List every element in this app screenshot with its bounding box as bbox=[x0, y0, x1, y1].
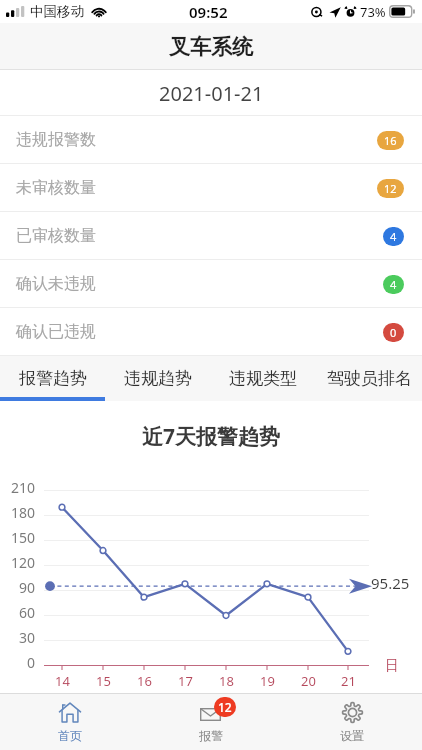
staticText: 19 bbox=[260, 672, 275, 690]
staticText: 150 bbox=[11, 528, 36, 547]
staticText: 16 bbox=[384, 133, 397, 148]
staticText: 设置 bbox=[340, 728, 364, 743]
staticText: 16 bbox=[137, 672, 152, 690]
staticText: 中国移动 bbox=[30, 3, 84, 20]
staticText: 180 bbox=[11, 503, 36, 522]
staticText: 0 bbox=[27, 653, 36, 672]
button[interactable]: 确认已违规 bbox=[0, 308, 422, 356]
staticText: 0 bbox=[390, 325, 397, 340]
staticText: 报警趋势 bbox=[19, 368, 87, 389]
staticText: 17 bbox=[178, 672, 193, 690]
staticText: 12 bbox=[218, 699, 232, 715]
staticText: 20 bbox=[301, 672, 316, 690]
button[interactable]: 违规类型 bbox=[210, 356, 316, 401]
staticText: 报警 bbox=[199, 728, 223, 743]
button[interactable]: 违规报警数 bbox=[0, 116, 422, 164]
staticText: 2021-01-21 bbox=[159, 80, 264, 107]
staticText: 09:52 bbox=[189, 2, 228, 22]
staticText: 违规报警数 bbox=[16, 130, 96, 150]
staticText: 驾驶员排名 bbox=[327, 368, 412, 389]
staticText: 14 bbox=[55, 672, 70, 690]
staticText: 叉车系统 bbox=[169, 34, 253, 60]
staticText: 60 bbox=[19, 603, 36, 622]
staticText: 18 bbox=[219, 672, 234, 690]
staticText: 30 bbox=[19, 628, 36, 647]
button[interactable]: 设置 bbox=[281, 693, 422, 750]
staticText: 90 bbox=[19, 578, 36, 597]
staticText: 95.25 bbox=[371, 573, 410, 593]
staticText: 首页 bbox=[58, 728, 82, 743]
staticText: 确认未违规 bbox=[16, 274, 96, 294]
staticText: 违规类型 bbox=[229, 368, 297, 389]
staticText: 已审核数量 bbox=[16, 226, 96, 246]
button[interactable]: 首页 bbox=[0, 693, 140, 750]
staticText: 近7天报警趋势 bbox=[142, 422, 281, 451]
staticText: 4 bbox=[390, 229, 397, 244]
staticText: 确认已违规 bbox=[16, 322, 96, 342]
staticText: 73% bbox=[360, 3, 386, 21]
button[interactable]: 违规趋势 bbox=[105, 356, 210, 401]
button[interactable]: 未审核数量 bbox=[0, 164, 422, 212]
staticText: 210 bbox=[11, 478, 36, 497]
button[interactable]: 2021-01-21 bbox=[0, 70, 422, 116]
button[interactable]: 已审核数量 bbox=[0, 212, 422, 260]
staticText: 15 bbox=[96, 672, 111, 690]
button[interactable]: 确认未违规 bbox=[0, 260, 422, 308]
button[interactable]: 驾驶员排名 bbox=[316, 356, 422, 401]
button[interactable]: 报警 bbox=[140, 693, 281, 750]
button[interactable]: 报警趋势 bbox=[0, 356, 105, 401]
staticText: 日 bbox=[385, 657, 399, 675]
staticText: 未审核数量 bbox=[16, 178, 96, 198]
staticText: 12 bbox=[384, 181, 397, 196]
staticText: 违规趋势 bbox=[124, 368, 192, 389]
staticText: 120 bbox=[11, 553, 36, 572]
staticText: 21 bbox=[341, 672, 356, 690]
staticText: 4 bbox=[390, 277, 397, 292]
